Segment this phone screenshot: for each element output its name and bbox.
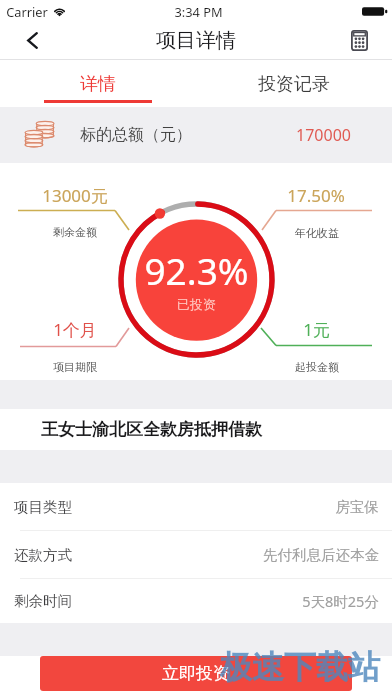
- staticText: 极速下载站: [220, 647, 380, 687]
- staticText: 170000: [296, 124, 351, 146]
- button[interactable]: 详情: [0, 60, 196, 107]
- staticText: Carrier: [6, 3, 48, 20]
- staticText: 起投金额: [295, 360, 339, 374]
- staticText: 项目期限: [53, 360, 97, 374]
- staticText: 项目类型: [14, 498, 72, 516]
- staticText: 王女士渝北区全款房抵押借款: [41, 419, 262, 440]
- staticText: 剩余金额: [53, 225, 97, 239]
- button[interactable]: 立即投资: [40, 656, 352, 691]
- staticText: 92.3%: [144, 245, 249, 295]
- button[interactable]: Calculator: [326, 22, 392, 59]
- staticText: 17.50%: [287, 184, 345, 207]
- staticText: 1个月: [53, 318, 97, 341]
- button[interactable]: 王女士渝北区全款房抵押借款: [0, 409, 392, 450]
- button[interactable]: 还款方式: [0, 531, 392, 578]
- staticText: 标的总额（元）: [80, 125, 192, 145]
- staticText: 投资记录: [258, 73, 330, 96]
- staticText: 年化收益: [295, 226, 339, 240]
- staticText: 详情: [80, 73, 116, 96]
- staticText: 5天8时25分: [302, 591, 379, 611]
- staticText: 立即投资: [162, 663, 230, 684]
- staticText: 项目详情: [156, 28, 236, 53]
- button[interactable]: Back: [0, 22, 64, 59]
- staticText: 1元: [303, 318, 330, 341]
- staticText: 剩余时间: [14, 592, 72, 610]
- staticText: 13000元: [42, 184, 108, 207]
- button[interactable]: 标的总额（元）: [0, 107, 392, 163]
- button[interactable]: 投资记录: [196, 60, 392, 107]
- staticText: 还款方式: [14, 546, 72, 564]
- button[interactable]: 剩余时间: [0, 579, 392, 623]
- staticText: 已投资: [177, 296, 216, 312]
- staticText: 3:34 PM: [174, 3, 223, 20]
- staticText: 房宝保: [335, 498, 379, 516]
- staticText: 先付利息后还本金: [263, 546, 379, 564]
- button[interactable]: 项目类型: [0, 483, 392, 530]
